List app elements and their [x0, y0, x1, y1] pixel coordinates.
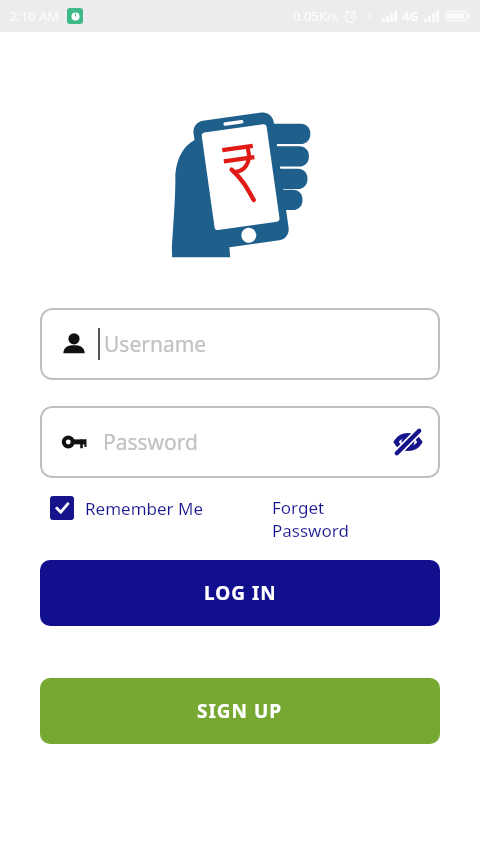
button[interactable]: Remember Me	[50, 496, 204, 520]
button[interactable]: SIGN UP	[40, 678, 440, 744]
staticText: Password	[103, 428, 394, 457]
button[interactable]: Password	[40, 406, 440, 478]
button[interactable]: Username	[40, 308, 440, 380]
staticText: 4G	[402, 7, 419, 25]
button[interactable]: Forget Password	[272, 496, 372, 542]
staticText: 0.05K/s	[293, 7, 338, 25]
staticText: Username	[104, 330, 422, 359]
staticText: Forget Password	[272, 496, 372, 542]
button[interactable]: LOG IN	[40, 560, 440, 626]
staticText: 2:10 AM	[10, 7, 60, 25]
staticText: SIGN UP	[197, 698, 283, 724]
button[interactable]: Toggle password visibility	[394, 428, 422, 456]
staticText: LOG IN	[204, 580, 277, 606]
staticText: Remember Me	[85, 497, 204, 520]
